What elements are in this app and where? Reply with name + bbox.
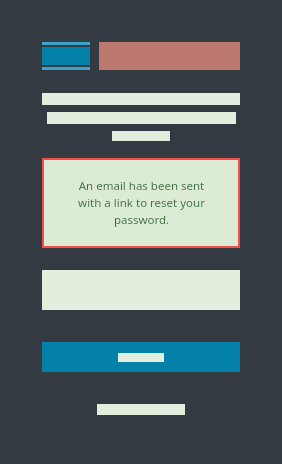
button[interactable]: Submit (42, 342, 240, 372)
staticText: An email has been sent with a link to re… (78, 178, 205, 228)
button[interactable]: Logo (42, 42, 90, 70)
button[interactable]: An email has been sent with a link to re… (44, 160, 238, 246)
